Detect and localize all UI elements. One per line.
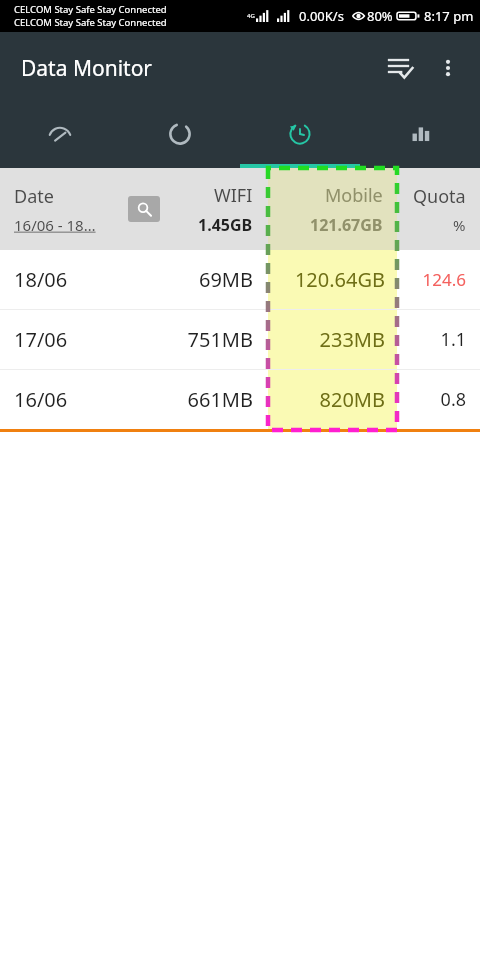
staticText: 233MB (319, 326, 385, 353)
staticText: 0.00K/s (299, 7, 344, 25)
staticText: Mobile (325, 183, 383, 208)
staticText: 16/06 - 18… (14, 215, 96, 235)
button[interactable]: Statistics (360, 104, 480, 168)
staticText: 120.64GB (294, 266, 385, 293)
staticText: 124.6 (422, 268, 466, 291)
staticText: 1.1 (440, 327, 466, 352)
staticText: 0.8 (440, 387, 466, 412)
staticText: Date (14, 184, 54, 209)
button[interactable]: Search (128, 196, 160, 222)
staticText: 18/06 (14, 266, 68, 293)
button[interactable]: Speed (0, 104, 120, 168)
staticText: Data Monitor (21, 54, 153, 83)
staticText: 17/06 (14, 326, 68, 353)
staticText: CELCOM Stay Safe Stay Connected (14, 3, 167, 16)
staticText: 1.45GB (198, 214, 253, 236)
staticText: 4G (247, 12, 255, 20)
staticText: WIFI (214, 183, 253, 208)
staticText: 751MB (187, 326, 253, 353)
staticText: 80% (367, 7, 393, 25)
button[interactable]: More options (424, 44, 472, 92)
button[interactable]: Select items (376, 44, 424, 92)
button[interactable]: History (240, 104, 360, 168)
button[interactable]: Usage (120, 104, 240, 168)
staticText: 820MB (319, 386, 385, 413)
staticText: 121.67GB (310, 214, 383, 236)
staticText: 69MB (198, 266, 253, 293)
staticText: CELCOM Stay Safe Stay Connected (14, 16, 167, 29)
staticText: 8:17 pm (424, 7, 474, 25)
staticText: % (453, 215, 466, 235)
staticText: Quota (413, 184, 466, 209)
staticText: 661MB (187, 386, 253, 413)
staticText: 16/06 (14, 386, 68, 413)
